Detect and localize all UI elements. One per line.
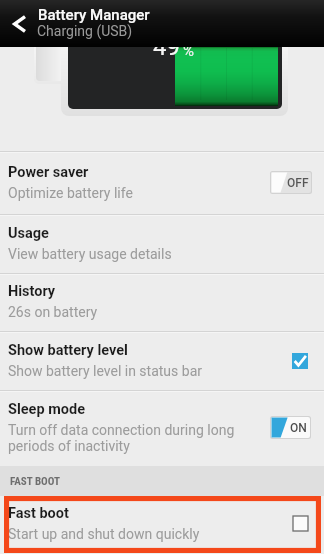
button[interactable]: Show battery level [0,332,324,391]
staticText: ON [290,421,307,435]
staticText: OFF [287,176,309,190]
staticText: View battery usage details [8,246,172,262]
staticText: Show battery level in status bar [8,363,203,379]
staticText: 26s on battery [8,304,98,320]
staticText: Show battery level [8,342,128,359]
staticText: History [8,283,56,300]
staticText: Fast boot [8,505,69,522]
button[interactable]: OFF [270,171,312,194]
staticText: % [183,42,194,60]
staticText: Optimize battery life [8,185,133,201]
staticText: Start up and shut down quickly [8,526,200,542]
button[interactable]: Show battery level [292,353,308,369]
staticText: Turn off data connection during long per… [8,422,240,454]
staticText: Power saver [8,164,89,181]
button[interactable]: Sleep mode [0,391,324,466]
button[interactable]: Fast boot [293,516,308,531]
staticText: Usage [8,225,49,242]
button[interactable]: Usage [0,215,324,274]
staticText: Battery Manager [38,6,150,24]
staticText: Charging (USB) [37,23,133,39]
button[interactable]: Power saver [0,152,324,215]
staticText: Sleep mode [8,401,85,418]
staticText: 49 [153,33,180,61]
button[interactable]: ON [270,416,311,439]
staticText: FAST BOOT [10,475,60,488]
button[interactable]: Navigate up [0,0,38,47]
button[interactable]: Fast boot [0,496,324,553]
button[interactable]: History [0,274,324,332]
